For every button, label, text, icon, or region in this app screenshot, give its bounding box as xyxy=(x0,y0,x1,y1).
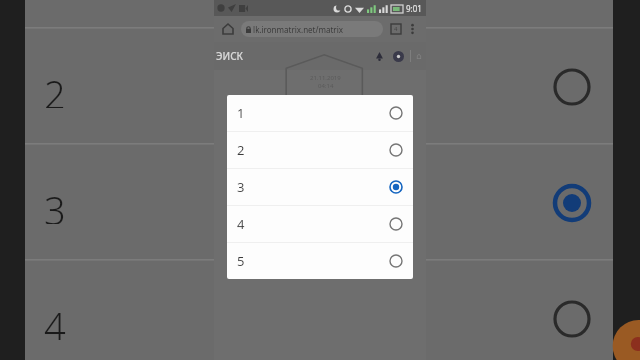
staticText: 3 xyxy=(44,184,66,224)
staticText: 1 xyxy=(237,104,245,122)
button[interactable]: Selected option xyxy=(552,183,592,223)
button[interactable]: Notifications xyxy=(372,49,386,63)
staticText: 9:01 xyxy=(406,3,422,14)
staticText: 2 xyxy=(237,141,245,159)
button[interactable]: 4 xyxy=(227,206,413,242)
button[interactable]: 1 xyxy=(227,95,413,131)
button[interactable]: 5 xyxy=(227,243,413,279)
staticText: 4 xyxy=(394,25,398,33)
button[interactable]: lk.ironmatrix.net/matrix xyxy=(241,21,383,37)
button[interactable]: Option xyxy=(552,67,592,107)
button[interactable]: 2 xyxy=(227,132,413,168)
staticText: 2 xyxy=(44,68,66,108)
staticText: 4 xyxy=(44,300,66,340)
staticText: 4 xyxy=(237,215,245,233)
button[interactable]: More options xyxy=(404,21,420,37)
button[interactable]: Home xyxy=(220,21,236,37)
button[interactable]: Help xyxy=(391,49,405,63)
button[interactable]: Option xyxy=(552,299,592,339)
staticText: ЭИСК xyxy=(216,49,244,63)
staticText: 04:14 xyxy=(318,82,334,90)
staticText: lk.ironmatrix.net/matrix xyxy=(251,24,343,35)
button[interactable]: Tabs xyxy=(388,21,404,37)
staticText: 5 xyxy=(237,252,245,270)
button[interactable]: 3 xyxy=(227,169,413,205)
staticText: ⌂ xyxy=(416,51,422,61)
staticText: 21.11.2019 xyxy=(310,74,341,82)
staticText: 3 xyxy=(237,178,245,196)
